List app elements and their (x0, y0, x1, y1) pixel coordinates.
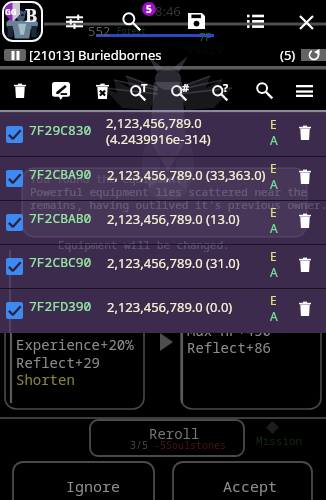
button[interactable]: Delete 7F2FD390 (294, 297, 316, 319)
button[interactable]: Edit value (41, 71, 81, 110)
staticText: Reroll (149, 424, 200, 443)
button[interactable]: Ignore (13, 462, 154, 500)
staticText: 7F2CBA90 (29, 165, 92, 183)
staticText: (5) (280, 46, 296, 64)
staticText: 7F (199, 29, 212, 44)
staticText: [21013] Buriedbornes (29, 46, 162, 64)
button[interactable]: Search unknown (204, 71, 244, 110)
button[interactable]: Toggle 7F29C830 (6, 126, 23, 143)
staticText: 7F2CBAB0 (29, 209, 92, 227)
button[interactable]: Delete selected (0, 71, 40, 110)
button[interactable]: Search (244, 71, 284, 110)
staticText: Equipment will be changed. (58, 237, 230, 252)
staticText: -5Soulstones (154, 438, 226, 452)
staticText: 2,123,456,789.0 (33,363.0) (107, 166, 266, 184)
staticText: A (270, 308, 278, 324)
staticText: Shorten (16, 370, 75, 389)
button[interactable]: Toggle 7F2CBC90 (0, 244, 326, 288)
button[interactable]: Close (294, 10, 318, 34)
staticText: Max HP+450 (187, 321, 271, 340)
staticText: A (270, 176, 278, 192)
staticText: 2,123,456,789.0 (31.0) (107, 254, 240, 272)
staticText: (4.2439916e-314) (106, 130, 211, 148)
button[interactable]: Toggle 7F2CBA90 (6, 170, 23, 187)
staticText: You found the equipment! (30, 171, 189, 186)
button[interactable]: Toggle 7F2CBA90 (0, 156, 326, 200)
staticText: 2,123,456,789.0 (13.0) (107, 210, 240, 228)
staticText: B (25, 3, 38, 28)
staticText: 2,123,456,789.0 (106, 114, 202, 132)
button[interactable]: Delete 7F2CBC90 (294, 253, 316, 275)
staticText: E (270, 248, 277, 264)
button[interactable]: Menu (284, 71, 324, 110)
staticText: 552 (88, 22, 111, 40)
staticText: 7F2FD390 (29, 297, 92, 315)
staticText: 99439 (186, 40, 224, 58)
button[interactable]: Toggle 7F2CBAB0 (6, 214, 23, 231)
staticText: 3/5 (130, 438, 154, 452)
staticText: 5 (146, 2, 152, 16)
staticText: Mission (256, 433, 303, 448)
staticText: E (270, 292, 277, 308)
button[interactable]: Toggle 7F2CBC90 (6, 258, 23, 275)
staticText: Reflect+86 (187, 338, 271, 357)
staticText: Forest (117, 25, 146, 36)
button[interactable]: Toggle 7F2CBAB0 (0, 200, 326, 244)
button[interactable]: Search (119, 9, 143, 33)
staticText: ? (223, 80, 229, 95)
button[interactable]: Accept (173, 462, 312, 500)
staticText: E (270, 116, 277, 132)
button[interactable]: Delete 7F2CBAB0 (294, 209, 316, 231)
button[interactable]: Show list (243, 9, 267, 33)
staticText: 7F2CBC90 (29, 253, 92, 271)
staticText: # (182, 80, 190, 95)
button[interactable]: Buriedbornes (4, 3, 41, 40)
staticText: Reflect+29 (16, 353, 100, 372)
staticText: Experience+20% (16, 335, 134, 354)
staticText: remains, having outlived it's previous o… (30, 197, 326, 212)
button[interactable]: Search number (163, 71, 203, 110)
staticText: Ignore (66, 476, 121, 496)
button[interactable]: Settings (62, 9, 86, 33)
staticText: 8:46 (155, 2, 181, 20)
button[interactable]: Delete 7F2CBA90 (294, 165, 316, 187)
button[interactable]: Toggle 7F29C830 (0, 112, 326, 156)
button[interactable]: Search text (122, 71, 162, 110)
staticText: E (270, 204, 277, 220)
staticText: Powerful equipment lies scattered near t… (30, 184, 308, 199)
button[interactable]: Pause (4, 49, 26, 61)
staticText: Accept (223, 476, 278, 496)
button[interactable]: Save (184, 9, 208, 33)
button[interactable]: Reroll (90, 420, 244, 456)
staticText: 7F29C830 (29, 121, 92, 139)
staticText: T (141, 80, 148, 95)
staticText: A (270, 132, 278, 148)
staticText: A (270, 264, 278, 280)
staticText: 2,123,456,789.0 (0.0) (107, 298, 233, 316)
button[interactable]: Toggle 7F2FD390 (6, 302, 23, 319)
button[interactable]: Clear list (82, 71, 122, 110)
button[interactable]: Delete 7F29C830 (294, 121, 316, 143)
staticText: E (270, 160, 277, 176)
button[interactable]: Toggle 7F2FD390 (0, 288, 326, 332)
staticText: A (270, 220, 278, 236)
button[interactable]: Refresh (301, 49, 326, 61)
staticText: GG (5, 6, 17, 17)
staticText: Rest+22 (16, 318, 75, 337)
